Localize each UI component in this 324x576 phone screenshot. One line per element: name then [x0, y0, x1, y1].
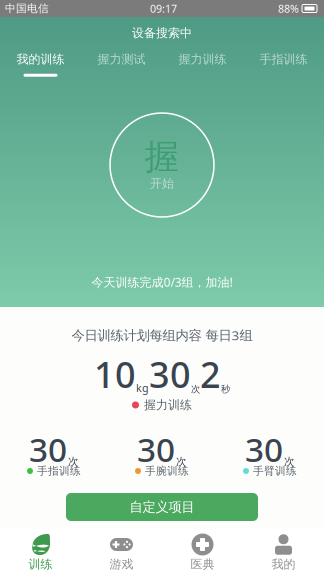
staticText: 30 — [29, 427, 67, 471]
staticText: 医典 — [190, 557, 214, 572]
button[interactable]: 握力测试 — [81, 49, 162, 85]
staticText: 中国电信 — [5, 2, 49, 15]
staticText: 秒 — [221, 383, 230, 395]
staticText: 自定义项目 — [129, 499, 194, 515]
staticText: 次 — [176, 455, 187, 468]
button[interactable]: 我的 — [243, 529, 324, 576]
staticText: 30 — [137, 427, 175, 471]
staticText: 握力测试 — [97, 52, 145, 67]
staticText: 手臂训练 — [253, 464, 297, 477]
staticText: 次 — [284, 455, 295, 468]
staticText: 手指训练 — [37, 464, 81, 477]
staticText: 30 — [245, 427, 283, 471]
button[interactable]: 游戏 — [81, 529, 162, 576]
button[interactable]: 握力训练 — [162, 49, 243, 85]
button[interactable]: 握 — [109, 112, 215, 218]
staticText: 09:17 — [150, 1, 177, 16]
button[interactable]: 训练 — [0, 529, 81, 576]
staticText: 次 — [191, 383, 200, 395]
staticText: 88% — [278, 1, 299, 16]
staticText: 30 — [149, 350, 191, 398]
staticText: 手腕训练 — [145, 464, 189, 477]
staticText: 手指训练 — [259, 52, 307, 67]
staticText: 我的训练 — [16, 52, 64, 67]
staticText: 次 — [68, 455, 79, 468]
button[interactable]: 我的训练 — [0, 49, 81, 85]
staticText: 今日训练计划每组内容 每日3组 — [71, 326, 252, 344]
staticText: 握 — [144, 136, 179, 178]
staticText: 开始 — [150, 176, 174, 191]
button[interactable]: 医典 — [162, 529, 243, 576]
staticText: 训练 — [28, 557, 52, 572]
staticText: 设备搜索中 — [132, 26, 192, 40]
button[interactable]: 自定义项目 — [66, 493, 258, 521]
staticText: kg — [136, 381, 149, 395]
staticText: 我的 — [271, 557, 295, 572]
staticText: 握力训练 — [178, 52, 226, 67]
staticText: 游戏 — [109, 557, 133, 572]
button[interactable]: 手指训练 — [243, 49, 324, 85]
staticText: 今天训练完成0/3组，加油! — [91, 274, 232, 290]
staticText: 2 — [200, 350, 221, 398]
staticText: 握力训练 — [144, 398, 192, 412]
staticText: 10 — [94, 350, 136, 398]
